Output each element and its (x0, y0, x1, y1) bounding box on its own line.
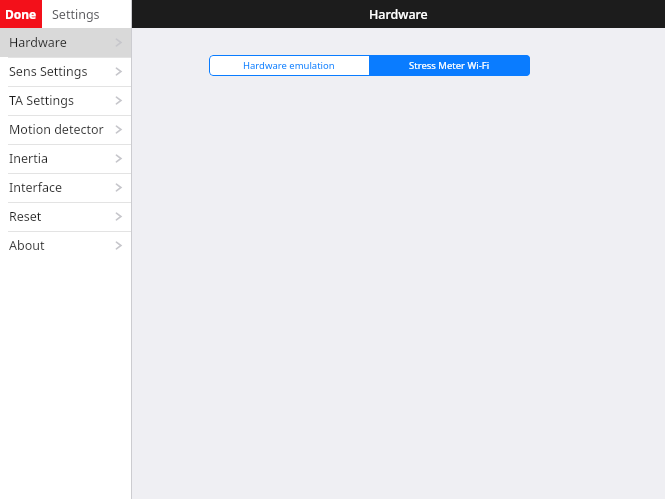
button[interactable]: Done (0, 0, 42, 28)
staticText: Stress Meter Wi-Fi (409, 59, 490, 72)
staticText: Reset (9, 208, 115, 225)
button[interactable]: Hardware (0, 28, 132, 57)
staticText: Done (5, 6, 37, 22)
staticText: About (9, 237, 115, 254)
staticText: Hardware emulation (243, 59, 335, 72)
button[interactable]: Stress Meter Wi-Fi (369, 55, 530, 76)
button[interactable]: Sens Settings (0, 57, 132, 86)
button[interactable]: Reset (0, 202, 132, 231)
staticText: Hardware (369, 6, 428, 23)
staticText: Settings (52, 6, 100, 23)
staticText: Inertia (9, 150, 115, 167)
staticText: Sens Settings (9, 63, 115, 80)
button[interactable]: TA Settings (0, 86, 132, 115)
staticText: TA Settings (9, 92, 115, 109)
button[interactable]: Hardware emulation (209, 55, 369, 76)
staticText: Hardware (9, 34, 115, 51)
button[interactable]: Inertia (0, 144, 132, 173)
staticText: Motion detector (9, 121, 115, 138)
button[interactable]: Motion detector (0, 115, 132, 144)
button[interactable]: Interface (0, 173, 132, 202)
button[interactable]: About (0, 231, 132, 260)
staticText: Interface (9, 179, 115, 196)
